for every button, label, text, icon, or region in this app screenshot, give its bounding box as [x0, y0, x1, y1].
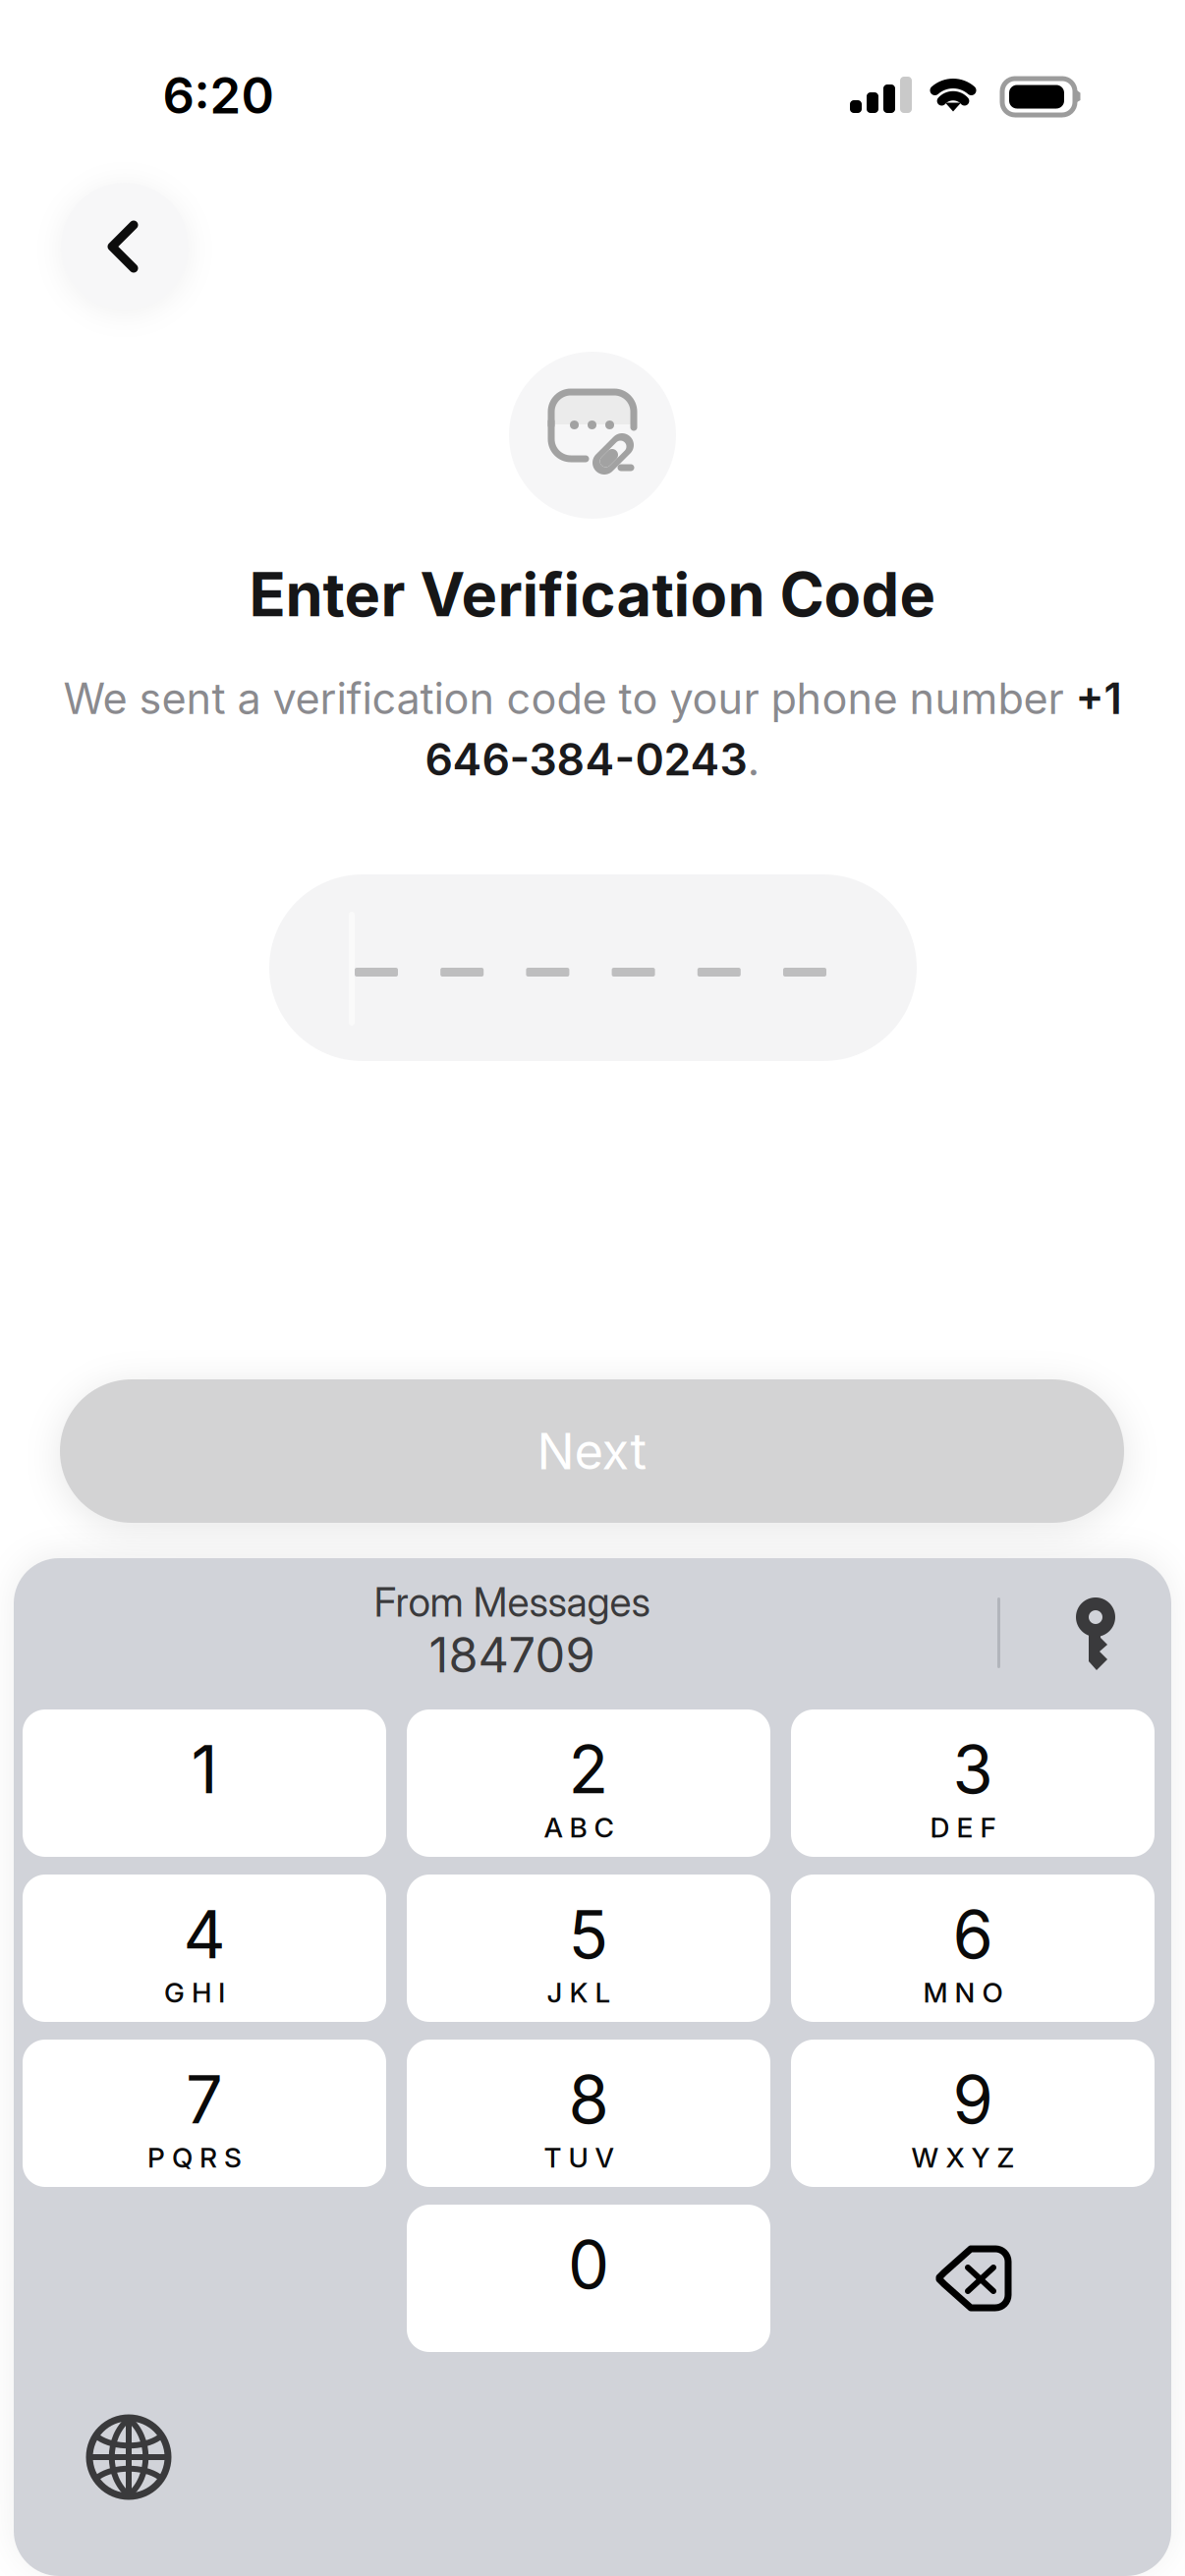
button[interactable]: Next	[60, 1379, 1124, 1523]
staticText: 9	[953, 2060, 993, 2139]
staticText: PQRS	[147, 2141, 242, 2174]
staticText: 1	[191, 1730, 218, 1809]
button[interactable]: 8	[407, 2040, 770, 2187]
button[interactable]: Delete	[791, 2205, 1155, 2352]
staticText: GHI	[164, 1976, 225, 2009]
staticText: JKL	[547, 1976, 611, 2009]
button[interactable]: Verification code	[269, 874, 917, 1061]
staticText: 4	[183, 1895, 226, 1974]
staticText: .	[747, 733, 760, 786]
staticText: 3	[953, 1730, 993, 1809]
staticText: 5	[568, 1895, 609, 1974]
button[interactable]: 5	[407, 1875, 770, 2022]
staticText: Enter Verification Code	[249, 558, 936, 631]
staticText: 646-384-0243	[425, 733, 747, 786]
button[interactable]: Passwords	[997, 1589, 1145, 1677]
button[interactable]: 1	[23, 1709, 386, 1857]
staticText: 8	[568, 2060, 609, 2139]
staticText: DEF	[930, 1811, 996, 1844]
staticText: MNO	[923, 1976, 1003, 2009]
button[interactable]: 6	[791, 1875, 1155, 2022]
staticText: 6	[953, 1895, 993, 1974]
staticText: WXYZ	[911, 2141, 1015, 2174]
button[interactable]: Next keyboard	[70, 2398, 188, 2516]
staticText: TUV	[544, 2141, 614, 2174]
staticText: 6:20	[163, 65, 274, 125]
staticText: 2	[568, 1730, 609, 1809]
button[interactable]: 9	[791, 2040, 1155, 2187]
button[interactable]: 0	[407, 2205, 770, 2352]
staticText: Next	[537, 1421, 647, 1481]
staticText: From Messages	[374, 1578, 650, 1626]
staticText: 184709	[429, 1626, 595, 1684]
button[interactable]: Back	[61, 183, 189, 310]
staticText: 0	[568, 2225, 609, 2304]
button[interactable]: 7	[23, 2040, 386, 2187]
staticText: 7	[186, 2060, 223, 2139]
button[interactable]: 4	[23, 1875, 386, 2022]
staticText: We sent a verification code to your phon…	[63, 673, 1075, 724]
staticText: ABC	[544, 1811, 614, 1844]
button[interactable]: 3	[791, 1709, 1155, 1857]
staticText: +1	[1075, 673, 1122, 724]
button[interactable]: From Messages	[26, 1578, 998, 1696]
button[interactable]: 2	[407, 1709, 770, 1857]
